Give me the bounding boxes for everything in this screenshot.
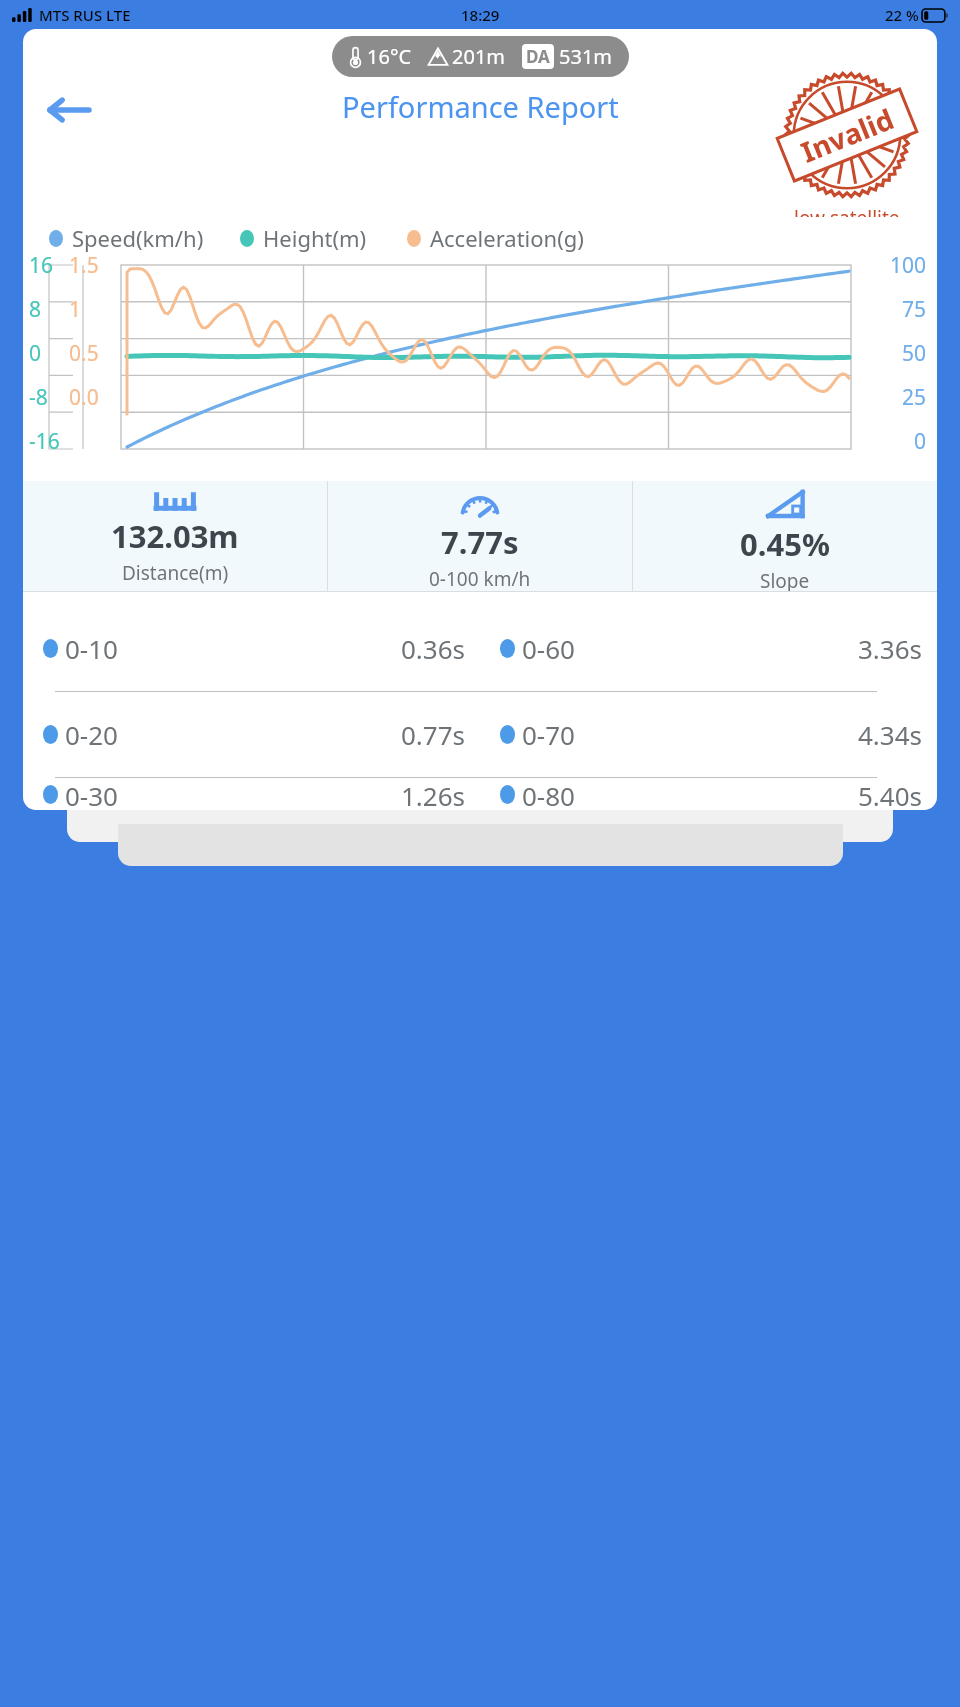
staticText: 0.36s xyxy=(401,631,466,666)
button[interactable]: Back xyxy=(37,79,99,141)
other: Slope xyxy=(764,489,806,519)
other: Time xyxy=(458,489,502,517)
button[interactable]: 16°C xyxy=(332,36,629,77)
staticText: 0-30 xyxy=(65,778,118,810)
button[interactable]: 0-20 xyxy=(23,692,937,777)
staticText: 25 xyxy=(902,383,927,412)
staticText: 132.03m xyxy=(111,515,239,557)
staticText: 0.0 xyxy=(69,383,99,412)
staticText: 0 xyxy=(29,339,42,368)
staticText: -8 xyxy=(29,383,48,412)
staticText: DA xyxy=(526,45,550,68)
staticText: 1.5 xyxy=(69,251,99,280)
staticText: 1.26s xyxy=(401,778,466,810)
staticText: Distance(m) xyxy=(122,560,229,586)
staticText: 0-60 xyxy=(522,631,575,666)
staticText: 75 xyxy=(902,295,927,324)
staticText: 1 xyxy=(69,295,82,324)
staticText: Height(m) xyxy=(263,223,367,253)
staticText: 531m xyxy=(559,43,613,70)
staticText: 0.5 xyxy=(69,339,99,368)
staticText: 0-100 km/h xyxy=(429,566,531,591)
staticText: Speed(km/h) xyxy=(72,223,204,253)
staticText: 22 % xyxy=(885,5,919,25)
other: Distance xyxy=(155,489,195,511)
staticText: 7.77s xyxy=(441,521,519,563)
staticText: 0-10 xyxy=(65,631,118,666)
staticText: Performance Report xyxy=(342,87,619,126)
staticText: 0.45% xyxy=(740,523,830,565)
button[interactable]: Time xyxy=(328,481,632,591)
button[interactable]: 0-10 xyxy=(23,606,937,691)
staticText: 0-70 xyxy=(522,717,575,752)
staticText: 18:29 xyxy=(461,5,500,25)
staticText: 8 xyxy=(29,295,42,324)
staticText: Invalid xyxy=(795,99,900,171)
button[interactable]: 0-30 xyxy=(23,778,937,810)
staticText: 0-80 xyxy=(522,778,575,810)
staticText: Acceleration(g) xyxy=(430,223,584,253)
staticText: 16 xyxy=(29,251,54,280)
staticText: 0-20 xyxy=(65,717,118,752)
staticText: 0.77s xyxy=(401,717,466,752)
staticText: 3.36s xyxy=(858,631,923,666)
staticText: 4.34s xyxy=(858,717,923,752)
staticText: 50 xyxy=(902,339,927,368)
staticText: -16 xyxy=(29,427,60,456)
staticText: 100 xyxy=(890,251,927,280)
staticText: 16°C xyxy=(367,43,412,70)
staticText: 5.40s xyxy=(858,778,923,810)
staticText: low satellite xyxy=(794,205,900,217)
staticText: 0 xyxy=(914,427,927,456)
staticText: MTS RUS LTE xyxy=(39,5,131,25)
staticText: Slope xyxy=(760,568,810,591)
staticText: 201m xyxy=(452,43,506,70)
button[interactable]: Distance xyxy=(23,481,327,591)
button[interactable]: Slope xyxy=(633,481,937,591)
